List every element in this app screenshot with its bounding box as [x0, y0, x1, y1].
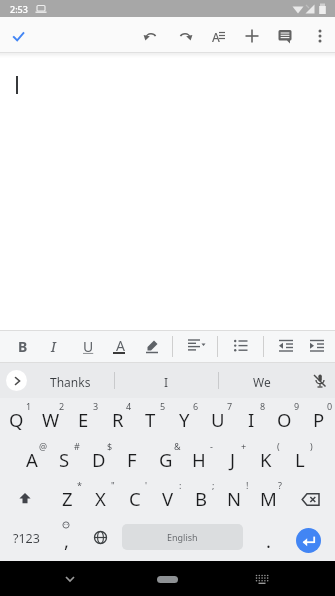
button[interactable]: We [232, 370, 292, 394]
button[interactable]: F [115, 440, 148, 478]
button[interactable] [254, 571, 270, 587]
staticText: " [111, 479, 115, 490]
button[interactable] [296, 528, 321, 553]
button[interactable] [312, 373, 328, 389]
staticText: R [112, 407, 124, 432]
staticText: 5 [160, 400, 166, 411]
button[interactable]: A [90, 333, 150, 357]
staticText: 1 [26, 400, 32, 411]
button[interactable]: W [34, 400, 67, 438]
staticText: H [192, 447, 206, 472]
button[interactable]: R [101, 400, 134, 438]
button[interactable]: T [134, 400, 167, 438]
button[interactable]: I [136, 370, 196, 394]
button[interactable]: I [235, 400, 268, 438]
button[interactable] [233, 338, 249, 354]
staticText: C [129, 486, 141, 511]
button[interactable]: M [252, 479, 285, 517]
staticText: T [145, 407, 156, 432]
button[interactable] [312, 28, 328, 44]
staticText: I [248, 407, 255, 432]
button[interactable]: U [58, 334, 118, 358]
staticText: Q [9, 407, 24, 432]
button[interactable]: Q [0, 400, 33, 438]
button[interactable]: P [302, 400, 335, 438]
button[interactable]: A [206, 28, 226, 46]
button[interactable]: Y [168, 400, 201, 438]
button[interactable]: , [36, 528, 96, 552]
button[interactable] [278, 338, 294, 354]
button[interactable]: English [122, 524, 243, 550]
staticText: 0 [327, 400, 333, 411]
button[interactable]: B [185, 479, 218, 517]
button[interactable] [143, 28, 159, 44]
button[interactable]: Z [51, 479, 84, 517]
staticText: W [42, 407, 60, 432]
staticText: E [78, 407, 89, 432]
staticText: ?123 [13, 530, 40, 547]
staticText: & [174, 440, 181, 451]
button[interactable] [62, 571, 78, 587]
staticText: U [83, 337, 94, 356]
button[interactable] [144, 338, 160, 354]
staticText: 7 [227, 400, 233, 411]
staticText: 8 [260, 400, 266, 411]
button[interactable]: A [15, 440, 48, 478]
button[interactable]: J [216, 440, 249, 478]
button[interactable]: U [201, 400, 234, 438]
button[interactable] [277, 28, 293, 44]
button[interactable]: D [82, 440, 115, 478]
staticText: V [162, 486, 174, 511]
button[interactable] [309, 338, 325, 354]
button[interactable] [218, 30, 230, 42]
button[interactable] [11, 375, 23, 387]
button[interactable]: G [149, 440, 182, 478]
staticText: D [92, 447, 106, 472]
staticText: English [167, 531, 198, 543]
staticText: B [195, 486, 208, 511]
staticText: - [210, 440, 213, 451]
button[interactable] [93, 530, 108, 545]
staticText: ! [246, 479, 249, 490]
staticText: O [277, 407, 292, 432]
button[interactable] [157, 576, 178, 583]
button[interactable]: K [249, 440, 282, 478]
staticText: P [313, 407, 325, 432]
button[interactable]: S [48, 440, 81, 478]
button[interactable] [17, 490, 33, 506]
button[interactable]: C [118, 479, 151, 517]
staticText: L [295, 447, 305, 472]
button[interactable]: O [268, 400, 301, 438]
button[interactable]: L [283, 440, 316, 478]
button[interactable] [177, 28, 193, 44]
button[interactable]: Thanks [40, 370, 100, 394]
staticText: U [211, 407, 225, 432]
staticText: ) [310, 440, 313, 451]
button[interactable] [300, 489, 322, 511]
button[interactable]: ?123 [0, 526, 56, 550]
button[interactable]: I [23, 334, 83, 358]
staticText: ? [278, 479, 282, 490]
button[interactable]: V [151, 479, 184, 517]
staticText: A [26, 447, 38, 472]
button[interactable]: E [67, 400, 100, 438]
staticText: I [164, 374, 169, 390]
staticText: G [159, 447, 173, 472]
staticText: * [77, 479, 82, 490]
button[interactable]: X [84, 479, 117, 517]
staticText: N [227, 486, 242, 511]
staticText: $ [107, 440, 113, 451]
button[interactable]: N [218, 479, 251, 517]
staticText: I [51, 337, 56, 356]
staticText: . [266, 528, 271, 552]
button[interactable]: H [182, 440, 215, 478]
staticText: Thanks [50, 374, 91, 390]
staticText: 6 [193, 400, 199, 411]
button[interactable] [244, 28, 260, 44]
button[interactable] [6, 370, 27, 391]
button[interactable]: B [0, 334, 53, 358]
staticText: K [260, 447, 272, 472]
button[interactable] [187, 337, 205, 355]
button[interactable] [11, 29, 26, 44]
button[interactable]: . [238, 528, 298, 552]
